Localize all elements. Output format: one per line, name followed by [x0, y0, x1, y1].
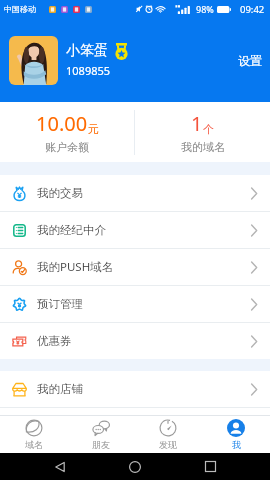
button[interactable]: 朋友: [67, 416, 134, 453]
staticText: 小笨蛋: [66, 42, 108, 60]
staticText: 发现: [159, 439, 177, 450]
staticText: 账户余额: [45, 140, 89, 154]
button[interactable]: 我的PUSH域名: [0, 249, 270, 285]
staticText: 我的店铺: [37, 382, 83, 396]
staticText: 1089855: [66, 63, 111, 78]
staticText: 10.00: [36, 110, 88, 137]
button[interactable]: 10.00: [0, 102, 134, 162]
staticText: 我: [232, 439, 241, 450]
staticText: 我的交易: [37, 186, 83, 200]
button[interactable]: 我的交易: [0, 175, 270, 211]
button[interactable]: 我的店铺: [0, 371, 270, 407]
button[interactable]: 1: [135, 102, 270, 162]
button[interactable]: 预订管理: [0, 286, 270, 322]
button[interactable]: Back: [45, 453, 75, 480]
staticText: 中国移动: [4, 4, 36, 14]
button[interactable]: 我: [202, 416, 270, 453]
button[interactable]: 设置: [228, 45, 262, 76]
button[interactable]: Recents: [195, 453, 225, 480]
button[interactable]: 优惠券: [0, 323, 270, 359]
staticText: 个: [203, 122, 214, 136]
staticText: 1: [191, 110, 203, 137]
staticText: 域名: [25, 439, 43, 450]
staticText: 98%: [196, 3, 214, 15]
staticText: 优惠券: [37, 334, 72, 348]
staticText: 朋友: [92, 439, 110, 450]
staticText: 09:42: [240, 3, 265, 16]
button[interactable]: 发现: [134, 416, 202, 453]
button[interactable]: 域名: [0, 416, 67, 453]
staticText: 我的经纪中介: [37, 223, 106, 237]
button[interactable]: Avatar: [9, 36, 58, 85]
staticText: 我的域名: [181, 140, 225, 154]
staticText: 设置: [238, 53, 262, 68]
staticText: 我的PUSH域名: [37, 259, 114, 275]
staticText: 预订管理: [37, 297, 83, 311]
button[interactable]: 我的经纪中介: [0, 212, 270, 248]
staticText: 元: [88, 122, 99, 136]
button[interactable]: Home: [120, 453, 150, 480]
